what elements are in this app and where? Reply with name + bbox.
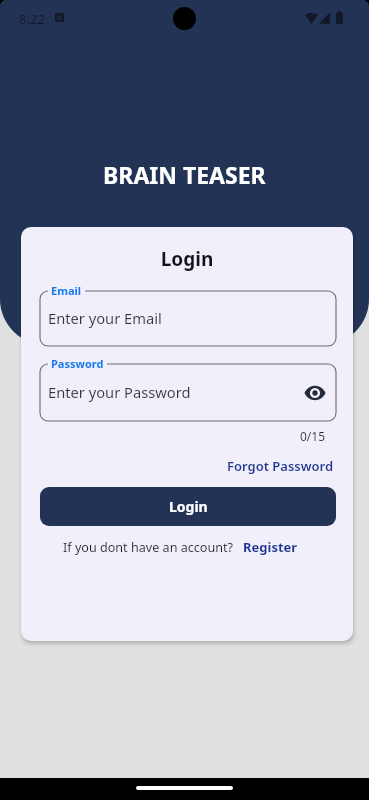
- staticText: Forgot Password: [227, 457, 334, 475]
- staticText: If you dont have an account?: [63, 539, 234, 556]
- staticText: Register: [243, 538, 298, 556]
- staticText: Login: [169, 497, 208, 516]
- staticText: Email: [51, 283, 82, 298]
- button[interactable]: Show password: [300, 378, 330, 408]
- staticText: Enter your Email: [48, 308, 162, 328]
- button[interactable]: Login: [40, 487, 336, 526]
- staticText: Enter your Password: [48, 382, 191, 402]
- staticText: 0/15: [40, 428, 325, 444]
- button[interactable]: Register: [241, 535, 300, 559]
- button[interactable]: Password: [40, 355, 336, 421]
- button[interactable]: Forgot Password: [225, 454, 336, 478]
- button[interactable]: Email: [40, 282, 336, 346]
- staticText: Login: [21, 246, 353, 272]
- staticText: BRAIN TEASER: [103, 159, 266, 190]
- staticText: A: [57, 13, 62, 22]
- staticText: Password: [51, 356, 104, 371]
- staticText: 8:22: [19, 10, 45, 28]
